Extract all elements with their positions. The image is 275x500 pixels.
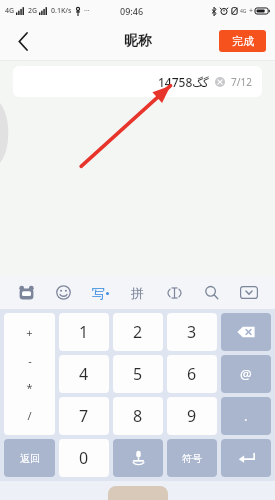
button[interactable]: Search	[193, 276, 230, 309]
staticText: 4G	[5, 6, 15, 16]
staticText: +	[26, 325, 33, 340]
staticText: 0.1K/s	[51, 6, 72, 16]
staticText: 完成	[232, 34, 254, 48]
staticText: 4G	[240, 8, 247, 15]
staticText: *	[26, 380, 33, 395]
button[interactable]: 7	[59, 397, 109, 435]
staticText: 写	[92, 285, 105, 301]
button[interactable]: 0	[59, 439, 109, 477]
button[interactable]: 2	[113, 313, 163, 351]
staticText: 4	[79, 363, 89, 385]
button[interactable]: Backspace	[221, 313, 271, 351]
button[interactable]: 6	[167, 355, 217, 393]
button[interactable]: 1	[59, 313, 109, 351]
staticText: 0	[79, 447, 89, 469]
button[interactable]: Emoji	[45, 276, 82, 309]
staticText: ···	[84, 6, 90, 16]
button[interactable]: Handwriting	[82, 276, 119, 309]
staticText: 7	[79, 405, 89, 427]
staticText: 9	[187, 405, 197, 427]
staticText: 2G	[28, 6, 38, 16]
staticText: /	[27, 408, 32, 423]
button[interactable]: @	[221, 355, 271, 393]
staticText: 09:46	[120, 5, 144, 17]
button[interactable]: +	[4, 313, 55, 435]
staticText: 3	[187, 321, 197, 343]
button[interactable]: Pinyin	[119, 276, 156, 309]
button[interactable]: 符号	[167, 439, 217, 477]
button[interactable]: 4	[59, 355, 109, 393]
staticText: 1	[79, 321, 89, 343]
staticText: 8	[133, 405, 143, 427]
staticText: 2	[133, 321, 143, 343]
button[interactable]: 8	[113, 397, 163, 435]
staticText: 拼	[131, 285, 144, 301]
staticText: 6	[187, 363, 197, 385]
button[interactable]: Hide keyboard	[230, 276, 267, 309]
button[interactable]: 5	[113, 355, 163, 393]
staticText: -	[28, 353, 32, 368]
button[interactable]: Enter	[221, 439, 271, 477]
staticText: 5	[133, 363, 143, 385]
staticText: +	[249, 6, 254, 16]
button[interactable]: .	[221, 397, 271, 435]
button[interactable]: Voice input	[113, 439, 163, 477]
button[interactable]: 9	[167, 397, 217, 435]
staticText: گگ14758	[158, 74, 209, 90]
button[interactable]: Baidu input	[8, 276, 45, 309]
button[interactable]: Resize keyboard	[156, 276, 193, 309]
button[interactable]: 返回	[4, 439, 55, 477]
staticText: 符号	[182, 452, 202, 465]
button[interactable]: Clear text	[215, 77, 225, 87]
button[interactable]: Back	[8, 26, 38, 56]
staticText: 7/12	[231, 75, 252, 89]
button[interactable]: 完成	[219, 30, 266, 52]
staticText: @	[240, 365, 252, 383]
staticText: 昵称	[124, 32, 152, 50]
button[interactable]: 3	[167, 313, 217, 351]
staticText: .	[244, 407, 248, 425]
staticText: 返回	[20, 452, 40, 465]
button[interactable]: گگ14758	[13, 66, 262, 97]
